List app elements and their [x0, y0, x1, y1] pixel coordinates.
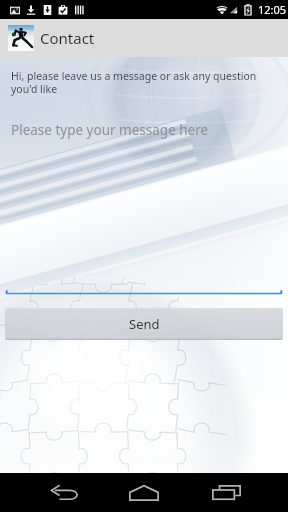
staticText: Contact	[40, 28, 95, 48]
staticText: Hi, please leave us a message or ask any…	[11, 69, 267, 96]
button[interactable]: Send	[5, 308, 283, 340]
staticText: Send	[129, 315, 160, 333]
button[interactable]: Home	[119, 473, 169, 512]
button[interactable]: Back	[40, 473, 90, 512]
staticText: Please type your message here	[11, 121, 209, 139]
button[interactable]: Recent apps	[201, 473, 251, 512]
staticText: 12:05	[258, 2, 287, 17]
